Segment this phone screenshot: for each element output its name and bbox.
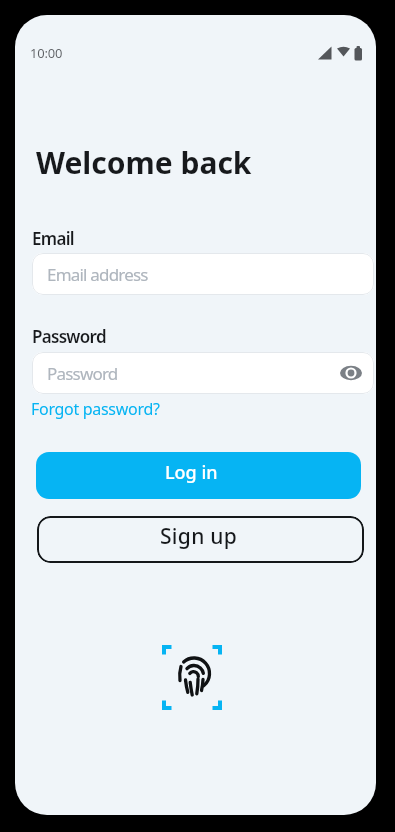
staticText: Forgot password? — [31, 398, 160, 420]
button[interactable]: Email address — [32, 253, 374, 295]
staticText: Log in — [165, 460, 218, 485]
staticText: 10:00 — [30, 44, 63, 62]
button[interactable]: Log in — [36, 452, 361, 499]
staticText: Email address — [47, 263, 148, 286]
staticText: Welcome back — [36, 142, 252, 183]
button[interactable]: Password — [32, 352, 374, 394]
button[interactable] — [147, 630, 237, 725]
staticText: Password — [47, 362, 118, 385]
staticText: Password — [32, 325, 106, 348]
button[interactable]: Forgot password? — [31, 398, 160, 420]
staticText: Sign up — [160, 522, 238, 551]
staticText: Email — [32, 227, 74, 250]
button[interactable]: Sign up — [37, 516, 364, 563]
